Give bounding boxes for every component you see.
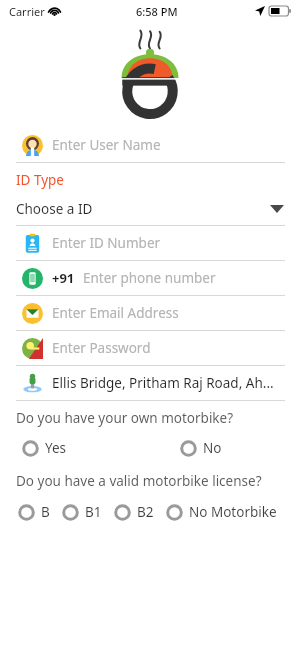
staticText: Yes: [45, 439, 67, 457]
staticText: Enter Email Address: [52, 304, 179, 322]
staticText: B: [41, 503, 50, 521]
button[interactable]: Enter ID Number: [0, 226, 300, 260]
button[interactable]: B: [18, 503, 50, 521]
staticText: +91: [52, 269, 75, 287]
button[interactable]: Ellis Bridge, Pritham Raj Road, Ah...: [0, 366, 300, 400]
button[interactable]: +91: [0, 261, 300, 295]
button[interactable]: Choose a ID: [0, 190, 300, 225]
staticText: B1: [85, 503, 102, 521]
button[interactable]: Enter User Name: [0, 128, 300, 162]
button[interactable]: B1: [62, 503, 102, 521]
staticText: Enter User Name: [52, 136, 161, 154]
other: Open ID type list: [269, 201, 285, 217]
staticText: Ellis Bridge, Pritham Raj Road, Ah...: [52, 374, 274, 392]
staticText: Carrier: [9, 4, 45, 19]
button[interactable]: Yes: [22, 439, 67, 457]
staticText: B2: [137, 503, 154, 521]
button[interactable]: Enter Email Address: [0, 296, 300, 330]
staticText: Enter phone number: [83, 269, 216, 287]
staticText: ID Type: [16, 171, 64, 189]
button[interactable]: B2: [114, 503, 154, 521]
button[interactable]: No Motorbike: [166, 503, 277, 521]
button[interactable]: No: [180, 439, 222, 457]
staticText: Enter ID Number: [52, 234, 161, 252]
staticText: Do you have a valid motorbike license?: [16, 472, 262, 490]
button[interactable]: Enter Password: [0, 331, 300, 365]
staticText: Choose a ID: [16, 200, 93, 218]
staticText: Do you have your own motorbike?: [16, 409, 234, 427]
staticText: No: [203, 439, 222, 457]
staticText: No Motorbike: [189, 503, 277, 521]
staticText: 6:58 PM: [136, 4, 178, 19]
staticText: Enter Password: [52, 339, 151, 357]
